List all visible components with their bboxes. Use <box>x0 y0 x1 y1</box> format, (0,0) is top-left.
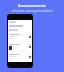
staticText: Announcements <box>18 3 46 8</box>
staticText: with these amazing new updates <box>11 9 53 13</box>
button[interactable]: Open item <box>8 44 32 54</box>
button[interactable]: Open item <box>8 34 32 44</box>
button[interactable]: Open item <box>8 54 32 62</box>
